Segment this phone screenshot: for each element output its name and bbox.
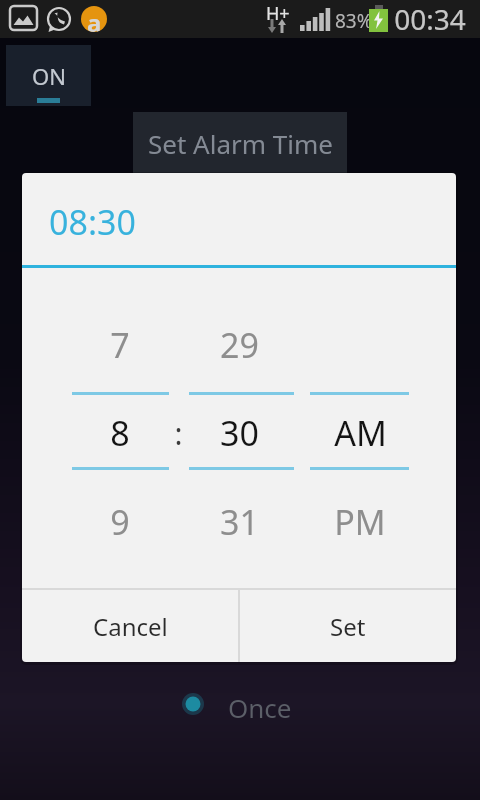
staticText: 83% (335, 8, 373, 34)
staticText: 08:30 (49, 199, 136, 245)
staticText: PM (334, 499, 386, 545)
button[interactable]: Once (178, 682, 308, 726)
staticText: 31 (220, 499, 259, 545)
button[interactable]: Cancel (22, 590, 238, 662)
staticText: H+ (266, 1, 290, 26)
button[interactable]: AM (310, 406, 410, 460)
button[interactable]: 30 (189, 406, 289, 460)
staticText: Once (228, 690, 292, 725)
staticText: 9 (110, 499, 130, 545)
button[interactable]: 8 (70, 406, 170, 460)
staticText: Cancel (93, 610, 168, 643)
staticText: 8 (110, 410, 130, 456)
staticText: 29 (220, 322, 259, 368)
staticText: ON (32, 61, 66, 91)
staticText: a (87, 6, 102, 32)
staticText: Set (330, 610, 366, 643)
staticText: : (174, 413, 183, 454)
staticText: 7 (110, 322, 130, 368)
staticText: AM (334, 410, 387, 456)
staticText: 00:34 (394, 0, 466, 38)
button[interactable]: ON (6, 45, 91, 106)
staticText: 30 (220, 410, 259, 456)
staticText: Set Alarm Time (148, 126, 333, 161)
button[interactable]: Set (240, 590, 456, 662)
